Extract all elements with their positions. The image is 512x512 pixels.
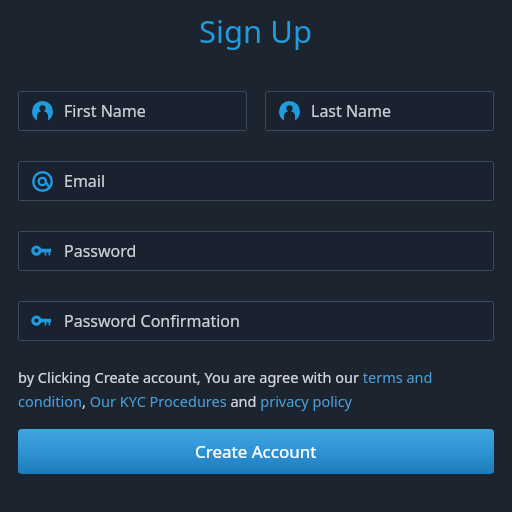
button[interactable]: Password [18, 231, 494, 271]
staticText: Password Confirmation [64, 310, 240, 332]
staticText: First Name [64, 100, 146, 122]
staticText: Email [64, 170, 106, 192]
staticText: Password [64, 240, 137, 262]
button[interactable]: Email [18, 161, 494, 201]
staticText: by Clicking Create account, You are agre… [18, 367, 494, 411]
button[interactable]: by Clicking Create account, You are agre… [18, 367, 494, 411]
button[interactable]: First Name [18, 91, 247, 131]
staticText: Sign Up [199, 10, 313, 52]
button[interactable]: Last Name [265, 91, 494, 131]
staticText: Last Name [311, 100, 392, 122]
button[interactable]: Password Confirmation [18, 301, 494, 341]
button[interactable]: Create Account [18, 429, 494, 474]
staticText: Create Account [195, 440, 317, 463]
